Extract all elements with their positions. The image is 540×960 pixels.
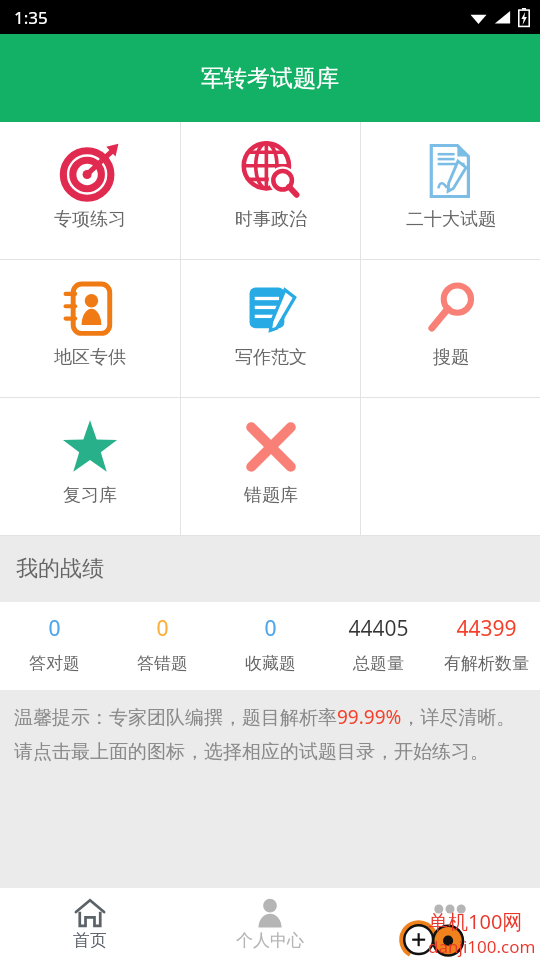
staticText: 首页 xyxy=(73,930,107,951)
staticText: 温馨提示：专家团队编撰，题目解析率99.99%，详尽清晰。 请点击最上面的图标，… xyxy=(14,704,516,763)
staticText: 答错题 xyxy=(137,653,188,674)
staticText: 个人中心 xyxy=(236,930,304,951)
staticText: 地区专供 xyxy=(54,346,126,369)
button[interactable]: 个人中心 xyxy=(180,888,360,960)
staticText: 0 xyxy=(156,614,169,643)
button[interactable]: 地区专供 xyxy=(0,260,180,397)
staticText: 有解析数量 xyxy=(444,653,529,674)
staticText: 答对题 xyxy=(29,653,80,674)
staticText: 军转考试题库 xyxy=(201,64,339,93)
button[interactable]: 44399 xyxy=(432,614,540,674)
staticText: 收藏题 xyxy=(245,653,296,674)
staticText: 单机100网 xyxy=(428,908,523,935)
button[interactable]: 复习库 xyxy=(0,398,180,535)
button[interactable]: 专项练习 xyxy=(0,122,180,259)
staticText: 44405 xyxy=(348,614,409,643)
staticText: 0 xyxy=(264,614,277,643)
staticText: danji100.com xyxy=(428,935,536,958)
button[interactable]: 时事政治 xyxy=(181,122,360,259)
staticText: 时事政治 xyxy=(235,208,307,231)
staticText: 专项练习 xyxy=(54,208,126,231)
button[interactable]: 二十大试题 xyxy=(361,122,540,259)
button[interactable]: 搜题 xyxy=(361,260,540,397)
button[interactable]: 44405 xyxy=(324,614,432,674)
staticText: 0 xyxy=(48,614,61,643)
button[interactable]: 0 xyxy=(0,614,108,674)
button[interactable]: 首页 xyxy=(0,888,180,960)
button[interactable]: 0 xyxy=(108,614,216,674)
button[interactable]: 0 xyxy=(216,614,324,674)
staticText: 错题库 xyxy=(244,484,298,507)
staticText: 复习库 xyxy=(63,484,117,507)
button[interactable]: More xyxy=(360,888,540,960)
staticText: 搜题 xyxy=(433,346,469,369)
button[interactable]: 错题库 xyxy=(181,398,360,535)
staticText: 写作范文 xyxy=(235,346,307,369)
staticText: 二十大试题 xyxy=(406,208,496,231)
staticText: 1:35 xyxy=(14,6,48,29)
button[interactable]: 写作范文 xyxy=(181,260,360,397)
staticText: 我的战绩 xyxy=(16,555,104,583)
staticText: 44399 xyxy=(456,614,517,643)
staticText: 总题量 xyxy=(353,653,404,674)
